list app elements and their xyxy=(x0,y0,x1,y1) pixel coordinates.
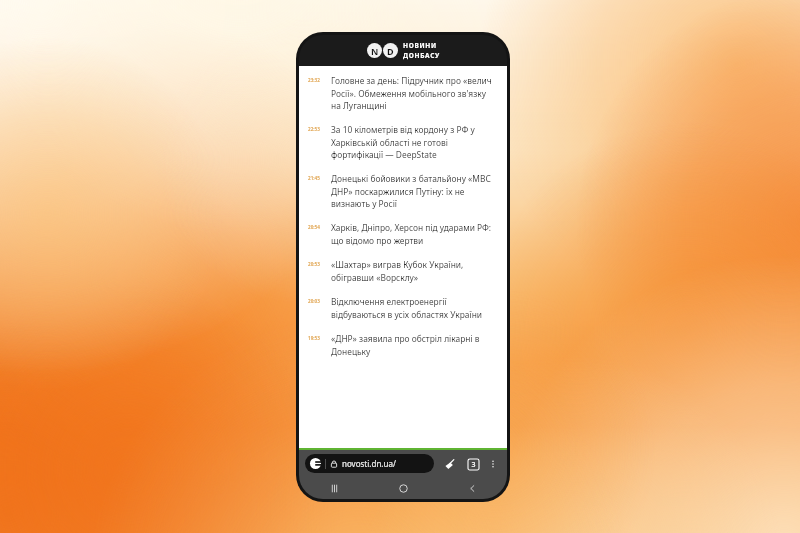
other: Browser xyxy=(310,458,321,469)
button[interactable]: 20:03 xyxy=(308,292,497,324)
staticText: 20:03 xyxy=(308,298,325,304)
staticText: «Шахтар» виграв Кубок України, обігравши… xyxy=(331,259,497,283)
button[interactable]: More options xyxy=(485,456,501,472)
staticText: 21:45 xyxy=(308,175,325,181)
staticText: 19:53 xyxy=(308,335,325,341)
button[interactable]: Browser xyxy=(305,454,434,473)
staticText: Донецькі бойовики з батальйону «МВС ДНР»… xyxy=(331,173,497,209)
button[interactable]: Tabs xyxy=(464,455,482,473)
button[interactable]: 20:53 xyxy=(308,255,497,287)
staticText: Головне за день: Підручник про «велич Ро… xyxy=(331,75,497,111)
staticText: За 10 кілометрів від кордону з РФ у Харк… xyxy=(331,124,497,160)
staticText: 23:32 xyxy=(308,77,325,83)
staticText: N xyxy=(371,45,379,57)
staticText: 22:53 xyxy=(308,126,325,132)
button[interactable]: Clean xyxy=(441,455,459,473)
staticText: ДОНБАСУ xyxy=(403,51,440,60)
staticText: Відключення електроенергії відбуваються … xyxy=(331,296,497,320)
staticText: НОВИНИ xyxy=(403,41,437,50)
button[interactable]: 23:32 xyxy=(308,71,497,115)
staticText: Харків, Дніпро, Херсон під ударами РФ: щ… xyxy=(331,222,497,246)
button[interactable]: 19:53 xyxy=(308,329,497,361)
staticText: 20:54 xyxy=(308,224,325,230)
button[interactable]: Back xyxy=(438,477,507,499)
other: Secure connection xyxy=(330,460,338,468)
button[interactable]: Home xyxy=(369,477,438,499)
staticText: 20:53 xyxy=(308,261,325,267)
staticText: novosti.dn.ua/ xyxy=(342,458,396,469)
button[interactable]: 22:53 xyxy=(308,120,497,164)
button[interactable]: 20:54 xyxy=(308,218,497,250)
staticText: 3 xyxy=(471,460,476,470)
button[interactable]: 21:45 xyxy=(308,169,497,213)
staticText: D xyxy=(387,45,394,57)
button[interactable]: Recent apps xyxy=(299,477,369,499)
staticText: «ДНР» заявила про обстріл лікарні в Доне… xyxy=(331,333,497,357)
